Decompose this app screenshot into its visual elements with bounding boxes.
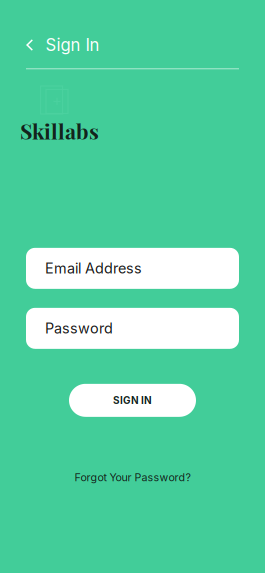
button[interactable]: Forgot Your Password? xyxy=(66,465,198,490)
button[interactable]: Sign In xyxy=(0,33,111,57)
button[interactable]: Password xyxy=(26,308,239,349)
button[interactable]: SIGN IN xyxy=(69,384,196,417)
staticText: Password xyxy=(45,320,113,337)
staticText: SIGN IN xyxy=(113,394,152,406)
button[interactable]: Email Address xyxy=(26,248,239,289)
staticText: Email Address xyxy=(45,260,142,277)
staticText: Sign In xyxy=(45,35,99,55)
staticText: Skillabs xyxy=(20,116,99,145)
staticText: Forgot Your Password? xyxy=(74,471,190,484)
